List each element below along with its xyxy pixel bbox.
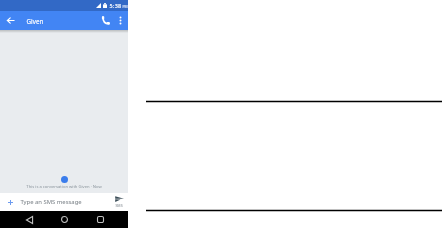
- button[interactable]: Call: [95, 11, 115, 30]
- staticText: This is a conversation with Given · Now: [26, 184, 102, 190]
- button[interactable]: Home: [54, 211, 74, 228]
- staticText: 5:38: [109, 2, 122, 9]
- button[interactable]: Back: [19, 211, 39, 228]
- staticText: PM: [122, 4, 128, 9]
- staticText: Given: [26, 17, 44, 25]
- staticText: Type an SMS message: [20, 198, 82, 206]
- staticText: SMS: [115, 203, 123, 208]
- button[interactable]: Send SMS: [108, 193, 130, 211]
- button[interactable]: Add attachment: [1, 193, 19, 211]
- button[interactable]: Recent apps: [90, 211, 110, 228]
- button[interactable]: Navigate up: [0, 11, 20, 30]
- button[interactable]: More options: [112, 11, 128, 30]
